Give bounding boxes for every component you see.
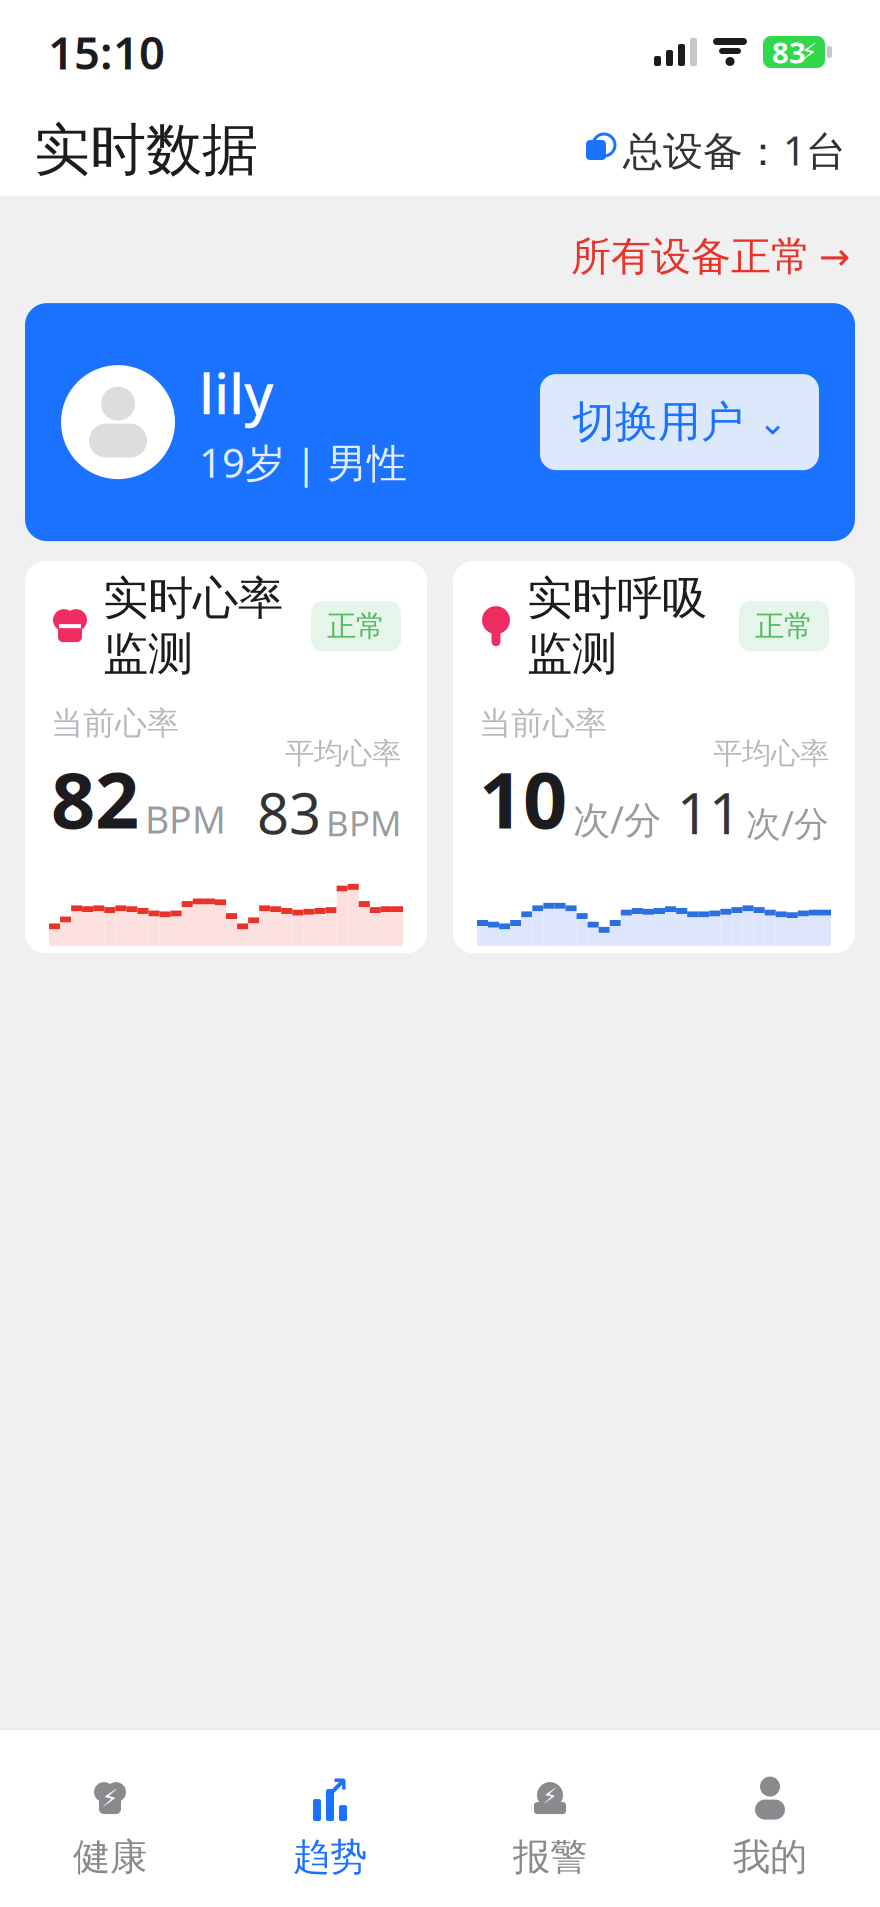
staticText: 总设备：1台 xyxy=(623,123,846,176)
staticText: 次/分 xyxy=(573,794,661,844)
staticText: 当前心率 xyxy=(479,704,607,743)
staticText: lily xyxy=(199,355,274,430)
staticText: 次/分 xyxy=(746,800,829,846)
staticText: ↗ xyxy=(320,1769,349,1809)
staticText: 正常 xyxy=(327,608,385,644)
button[interactable]: 总设备：1台 xyxy=(579,123,846,176)
staticText: 平均心率 xyxy=(285,735,401,771)
staticText: 82 xyxy=(51,747,139,850)
staticText: 83 xyxy=(772,32,806,71)
staticText: 19岁 | 男性 xyxy=(199,436,407,489)
staticText: ⚡︎ xyxy=(542,1784,557,1808)
staticText: 11 xyxy=(677,775,741,850)
staticText: ⚡︎ xyxy=(101,1784,118,1812)
staticText: BPM xyxy=(326,800,401,846)
staticText: ⚡︎ xyxy=(800,38,817,66)
staticText: 15:10 xyxy=(48,22,165,82)
staticText: BPM xyxy=(145,794,226,844)
staticText: 实时心率监测 xyxy=(103,570,283,682)
staticText: 切换用户 xyxy=(572,396,744,448)
staticText: ⌄ xyxy=(758,402,787,442)
button[interactable]: ⚡︎ xyxy=(440,1768,660,1886)
staticText: 正常 xyxy=(755,608,813,644)
button[interactable]: 房间状态 xyxy=(0,1840,880,1907)
button[interactable]: 所有设备正常 xyxy=(571,232,850,281)
button[interactable]: 我的 xyxy=(660,1768,880,1886)
button[interactable]: ⚡︎ xyxy=(0,1768,220,1886)
staticText: → xyxy=(819,235,850,278)
staticText: 10 xyxy=(479,747,567,850)
button[interactable]: ↗ xyxy=(220,1768,440,1886)
staticText: 平均心率 xyxy=(713,735,829,771)
staticText: 实时呼吸监测 xyxy=(527,570,707,682)
button[interactable]: 切换用户 xyxy=(540,374,819,470)
staticText: 83 xyxy=(257,775,321,850)
staticText: 当前心率 xyxy=(51,704,179,743)
staticText: 健康 xyxy=(73,1834,147,1880)
staticText: 所有设备正常 xyxy=(571,232,811,281)
staticText: 报警 xyxy=(513,1834,587,1880)
staticText: 我的 xyxy=(733,1834,807,1880)
staticText: 趋势 xyxy=(293,1834,367,1880)
staticText: 实时数据 xyxy=(34,116,258,184)
